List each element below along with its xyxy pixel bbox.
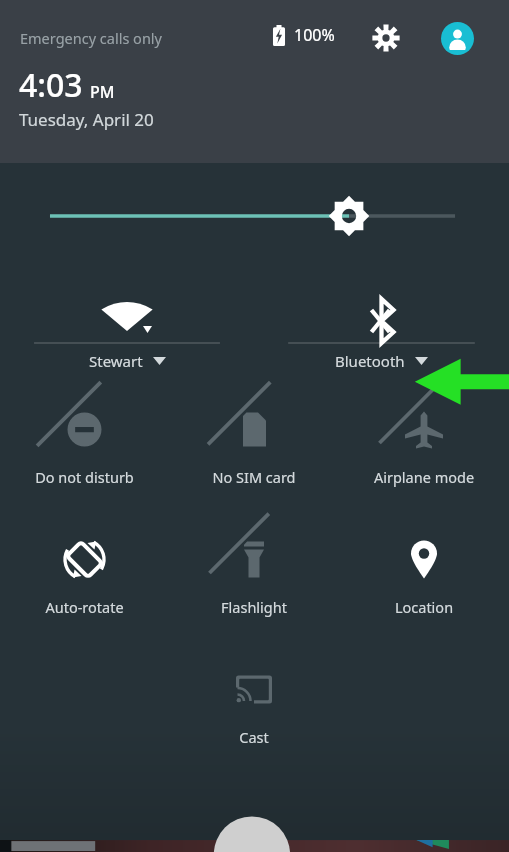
staticText: Cast <box>169 727 339 747</box>
button[interactable]: Settings <box>366 18 406 58</box>
button[interactable]: Cast <box>169 650 339 780</box>
staticText: Tuesday, April 20 <box>19 108 154 131</box>
button[interactable]: Location <box>339 520 509 650</box>
button[interactable]: No SIM card <box>169 390 339 520</box>
staticText: No SIM card <box>169 467 339 487</box>
button[interactable]: Flashlight <box>169 520 339 650</box>
button[interactable]: Do not disturb <box>0 390 169 520</box>
staticText: Airplane mode <box>339 467 509 487</box>
button[interactable]: User profile <box>436 17 478 59</box>
staticText: 100% <box>294 24 335 46</box>
staticText: PM <box>90 81 115 103</box>
staticText: Flashlight <box>169 597 339 617</box>
button[interactable]: Wi-Fi Stewart <box>0 269 254 390</box>
button[interactable]: Airplane mode <box>339 390 509 520</box>
staticText: Stewart <box>89 351 143 371</box>
staticText: Location <box>339 597 509 617</box>
button[interactable]: Brightness <box>0 163 509 269</box>
staticText: Auto-rotate <box>0 597 169 617</box>
button[interactable]: Bluetooth <box>254 269 509 390</box>
staticText: Do not disturb <box>0 467 169 487</box>
button[interactable]: Auto-rotate <box>0 520 169 650</box>
staticText: 4:03 <box>19 63 83 107</box>
staticText: Emergency calls only <box>20 28 162 48</box>
staticText: Bluetooth <box>335 351 405 371</box>
